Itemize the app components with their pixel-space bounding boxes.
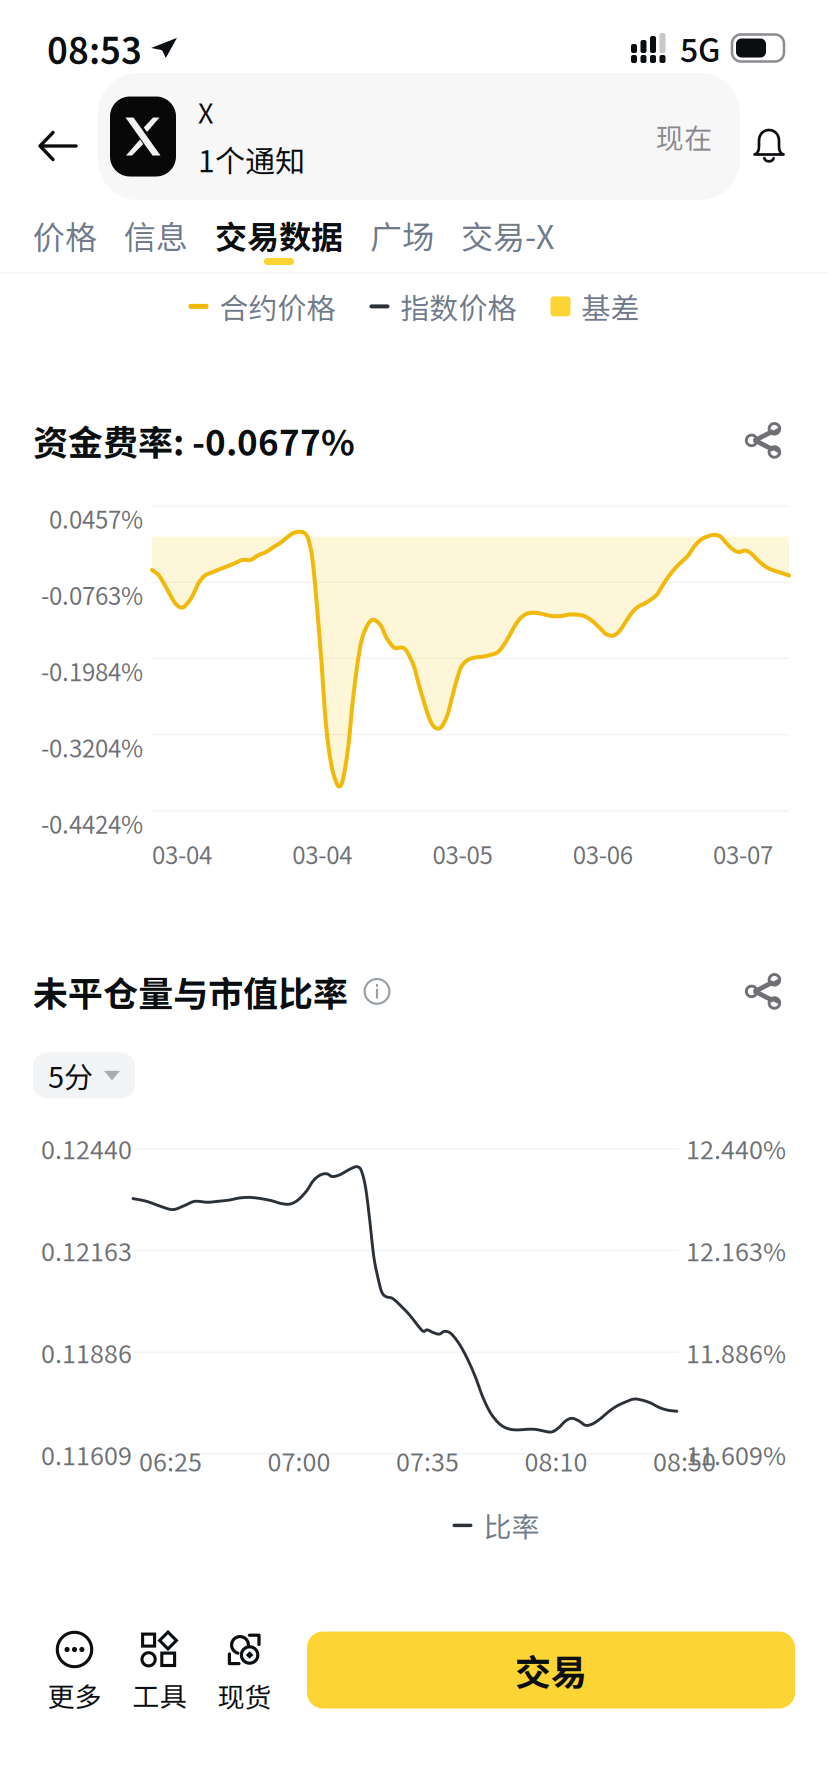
staticText: 12.163% xyxy=(686,1232,786,1268)
button[interactable]: 更多 xyxy=(32,1614,117,1715)
button[interactable]: 信息 xyxy=(110,196,201,265)
button[interactable]: 价格 xyxy=(19,196,110,265)
staticText: -0.0763% xyxy=(41,577,143,612)
staticText: 03-04 xyxy=(152,836,212,871)
button[interactable]: Back xyxy=(12,96,104,196)
staticText: 比率 xyxy=(483,1505,539,1546)
staticText: -0.4424% xyxy=(41,806,143,841)
button[interactable]: 广场 xyxy=(356,196,447,265)
button[interactable]: 工具 xyxy=(117,1614,202,1715)
button[interactable]: 5分 xyxy=(33,1052,135,1098)
staticText: -0.1984% xyxy=(41,653,143,688)
staticText: 03-05 xyxy=(432,836,492,871)
staticText: 广场 xyxy=(370,212,434,258)
button[interactable]: 交易数据 xyxy=(201,196,356,265)
staticText: 合约价格 xyxy=(219,285,335,327)
staticText: 0.12440 xyxy=(41,1130,132,1166)
staticText: 08:50 xyxy=(653,1442,716,1479)
staticText: 0.11609 xyxy=(41,1436,132,1472)
button[interactable]: Share xyxy=(724,948,802,1034)
staticText: 0.12163 xyxy=(41,1232,132,1268)
staticText: 交易-X xyxy=(461,212,554,258)
staticText: 1个通知 xyxy=(198,137,305,181)
staticText: 5G xyxy=(680,25,720,71)
button[interactable]: 交易-X xyxy=(447,196,567,265)
button[interactable]: X xyxy=(98,73,740,200)
staticText: 0.0457% xyxy=(49,501,143,536)
staticText: 交易 xyxy=(515,1644,587,1696)
staticText: -0.3204% xyxy=(41,730,143,765)
staticText: 更多 xyxy=(47,1675,101,1715)
staticText: 12.440% xyxy=(686,1130,786,1166)
button[interactable]: Notifications xyxy=(723,96,815,196)
staticText: 基差 xyxy=(581,285,639,327)
staticText: 5分 xyxy=(48,1054,93,1096)
staticText: 价格 xyxy=(33,212,97,258)
staticText: 11.886% xyxy=(686,1334,786,1370)
button[interactable]: Share xyxy=(724,397,802,483)
button[interactable]: 现货 xyxy=(202,1614,287,1715)
staticText: 06:25 xyxy=(139,1442,202,1479)
staticText: 交易数据 xyxy=(215,212,343,258)
staticText: 07:35 xyxy=(396,1442,459,1479)
staticText: 03-07 xyxy=(713,836,773,871)
staticText: X xyxy=(198,92,213,131)
staticText: 07:00 xyxy=(267,1442,330,1479)
staticText: 11.609% xyxy=(686,1436,786,1472)
button[interactable]: 交易 xyxy=(307,1631,795,1708)
staticText: 03-04 xyxy=(292,836,352,871)
staticText: 现货 xyxy=(217,1676,271,1715)
staticText: 信息 xyxy=(124,212,188,258)
staticText: 未平仓量与市值比率 xyxy=(33,966,348,1017)
staticText: 现在 xyxy=(656,116,712,157)
staticText: 工具 xyxy=(132,1675,186,1715)
staticText: 0.11886 xyxy=(41,1334,132,1370)
staticText: 08:53 xyxy=(47,22,142,74)
staticText: 03-06 xyxy=(573,836,633,871)
staticText: 指数价格 xyxy=(400,285,516,327)
staticText: 08:10 xyxy=(524,1442,587,1479)
staticText: 资金费率: -0.0677% xyxy=(33,415,355,466)
